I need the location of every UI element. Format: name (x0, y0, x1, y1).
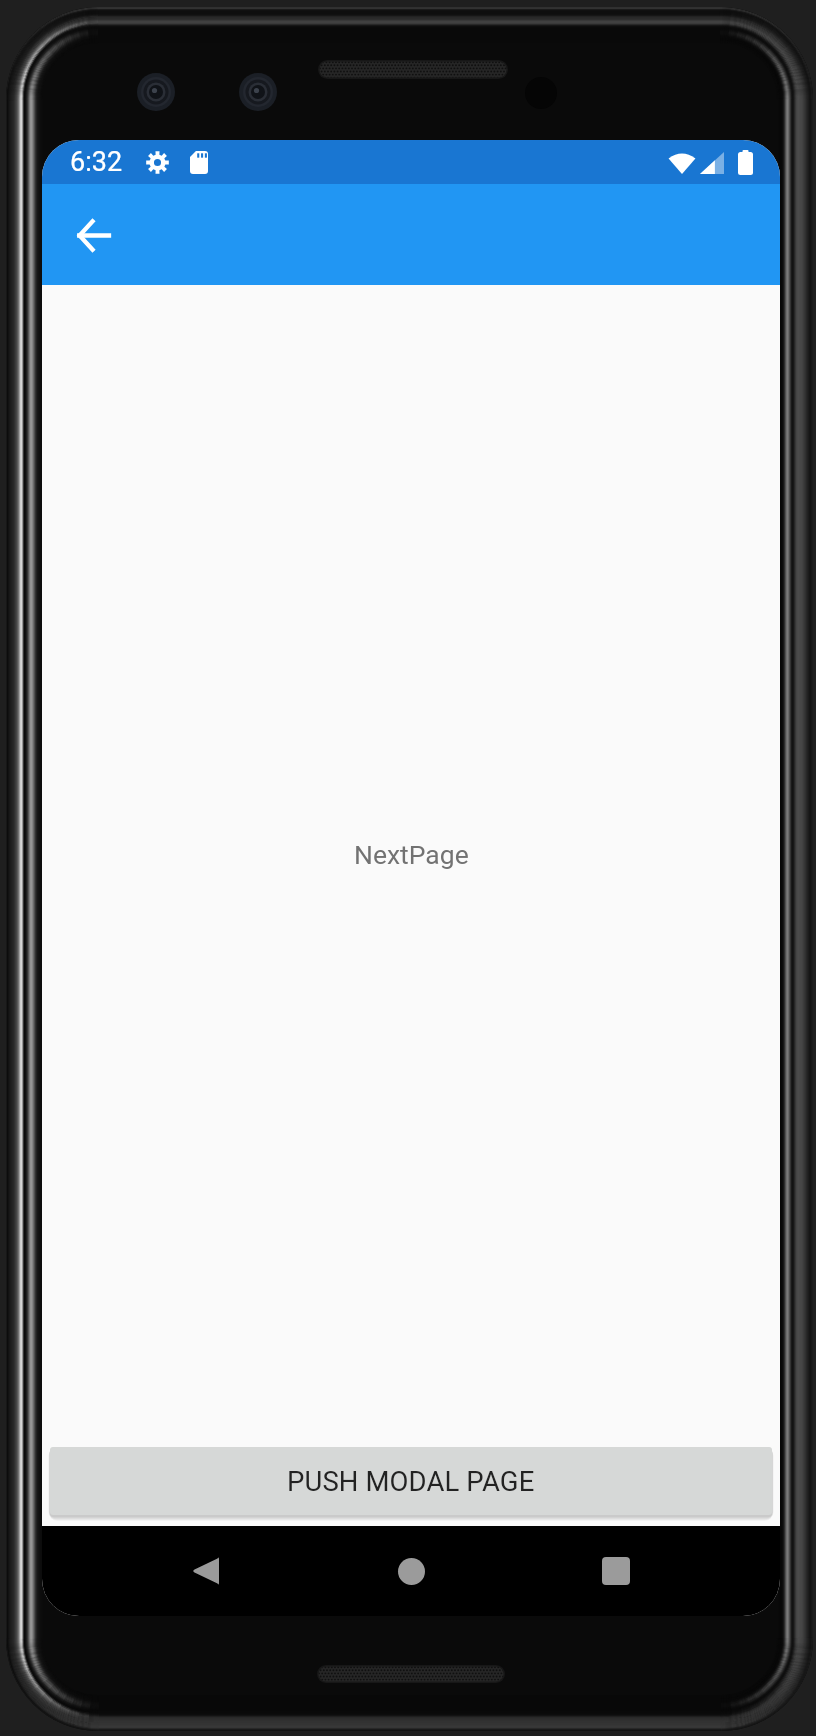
staticText: 6:32 (70, 146, 123, 178)
button[interactable]: Home (380, 1540, 442, 1602)
button[interactable]: PUSH MODAL PAGE (50, 1447, 772, 1515)
button[interactable]: Back (69, 211, 117, 259)
button[interactable]: Back (174, 1540, 236, 1602)
button[interactable]: Recents (585, 1540, 647, 1602)
staticText: PUSH MODAL PAGE (287, 1465, 535, 1497)
staticText: NextPage (354, 839, 469, 870)
